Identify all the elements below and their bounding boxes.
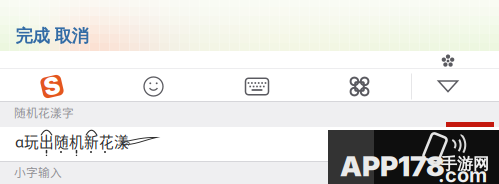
staticText: ɑ玩出随机新花漾 [15, 130, 129, 152]
button[interactable]: Shortcuts [308, 72, 411, 100]
button[interactable]: Hide keyboard [412, 72, 484, 100]
staticText: 小字输入 [14, 163, 62, 180]
button[interactable]: Keyboard [206, 72, 308, 100]
button[interactable]: 完成 [15, 25, 49, 47]
staticText: 完成 [15, 25, 49, 47]
button[interactable]: Fancy text effects [405, 49, 491, 69]
staticText: S [44, 71, 60, 100]
button[interactable]: 取消 [54, 25, 88, 47]
button[interactable]: Sogou [3, 72, 101, 100]
button[interactable]: Emoji [101, 72, 206, 100]
staticText: 取消 [54, 25, 88, 47]
button[interactable]: ɑ玩出随机新花漾 [0, 127, 499, 161]
staticText: APP178 [340, 149, 445, 183]
staticText: 随机花漾字 [14, 104, 74, 121]
staticText: .com [438, 163, 487, 184]
staticText: 手游网 [441, 154, 489, 174]
